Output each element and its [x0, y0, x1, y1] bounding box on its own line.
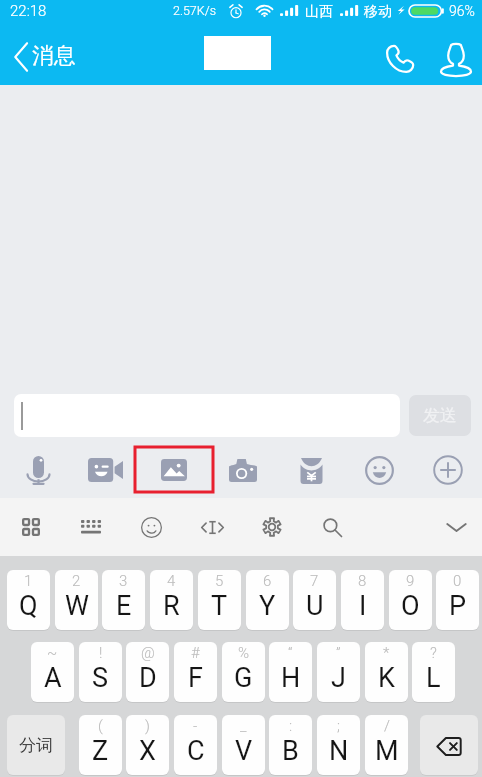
button[interactable]: 5 [198, 570, 241, 630]
staticText: A [44, 662, 62, 694]
staticText: ; [337, 717, 340, 735]
button[interactable]: # [174, 642, 217, 702]
staticText: 移动 [364, 3, 392, 21]
staticText: @ [141, 644, 155, 662]
button[interactable]: ? [412, 642, 455, 702]
button[interactable]: Voice [14, 448, 62, 492]
staticText: X [139, 735, 156, 767]
button[interactable]: More [424, 448, 472, 492]
button[interactable]: / [365, 715, 408, 775]
button[interactable]: - [174, 715, 217, 775]
button[interactable]: ! [79, 642, 122, 702]
staticText: H [281, 662, 301, 694]
button[interactable]: 1 [7, 570, 50, 630]
button[interactable]: Hide keyboard [438, 509, 474, 545]
staticText: / [384, 717, 390, 735]
staticText: - [193, 717, 198, 735]
staticText: % [238, 644, 250, 662]
staticText: 7 [310, 572, 319, 590]
button[interactable]: 2 [55, 570, 98, 630]
button[interactable]: ( [79, 715, 122, 775]
staticText: 2.57K/s [173, 3, 216, 18]
staticText: : [289, 717, 293, 735]
button[interactable]: Red packet [287, 448, 335, 492]
staticText: M [375, 735, 399, 767]
staticText: Y [259, 590, 276, 622]
button[interactable]: Delete [420, 715, 478, 775]
staticText: 9 [406, 572, 415, 590]
button[interactable]: Symbols [13, 509, 49, 545]
button[interactable]: Emoji [355, 448, 403, 492]
staticText: 分词 [19, 735, 53, 756]
staticText: C [187, 735, 205, 767]
staticText: G [234, 662, 253, 694]
button[interactable]: Move cursor [194, 509, 230, 545]
button[interactable]: Settings [254, 509, 290, 545]
button[interactable]: 6 [246, 570, 289, 630]
staticText: F [188, 662, 203, 694]
staticText: 22:18 [10, 2, 47, 20]
button[interactable]: Profile [434, 37, 478, 81]
button[interactable]: ” [317, 642, 360, 702]
staticText: W [65, 590, 89, 622]
button[interactable]: ~ [31, 642, 74, 702]
staticText: 1 [24, 572, 33, 590]
staticText: E [116, 590, 132, 622]
staticText: N [329, 735, 349, 767]
staticText: 0 [453, 572, 462, 590]
staticText: 4 [167, 572, 176, 590]
staticText: O [401, 590, 420, 622]
button[interactable]: 8 [341, 570, 384, 630]
staticText: U [306, 590, 324, 622]
button[interactable]: Search [314, 509, 350, 545]
button[interactable]: 分词 [7, 715, 65, 775]
staticText: R [163, 590, 180, 622]
button[interactable]: ; [317, 715, 360, 775]
button[interactable] [14, 394, 400, 437]
button[interactable]: : [269, 715, 312, 775]
staticText: 发送 [423, 405, 457, 426]
staticText: 6 [263, 572, 272, 590]
staticText: 3 [119, 572, 128, 590]
staticText: 2 [72, 572, 81, 590]
staticText: Q [19, 590, 38, 622]
staticText: ) [145, 717, 150, 735]
button[interactable]: 发送 [409, 395, 471, 436]
staticText: P [449, 590, 467, 622]
button[interactable]: 0 [436, 570, 479, 630]
button[interactable]: 消息 [4, 28, 86, 85]
button[interactable]: 9 [389, 570, 432, 630]
staticText: ? [430, 644, 437, 662]
button[interactable]: _ [222, 715, 265, 775]
staticText: ~ [47, 644, 58, 662]
staticText: K [378, 662, 395, 694]
button[interactable]: Image [135, 447, 213, 492]
staticText: B [282, 735, 299, 767]
staticText: ” [336, 644, 341, 662]
staticText: S [92, 662, 109, 694]
staticText: ! [99, 644, 103, 662]
button[interactable]: Keyboard layout [73, 509, 109, 545]
staticText: L [426, 662, 441, 694]
button[interactable]: * [365, 642, 408, 702]
button[interactable]: ) [126, 715, 169, 775]
staticText: * [383, 644, 390, 662]
button[interactable]: Video [81, 448, 129, 492]
button[interactable]: Camera [219, 448, 267, 492]
button[interactable]: @ [126, 642, 169, 702]
staticText: I [359, 590, 367, 622]
button[interactable]: 4 [150, 570, 193, 630]
staticText: Z [92, 735, 109, 767]
button[interactable]: % [222, 642, 265, 702]
staticText: “ [288, 644, 293, 662]
button[interactable]: 7 [293, 570, 336, 630]
staticText: V [235, 735, 253, 767]
button[interactable]: “ [269, 642, 312, 702]
staticText: 山西 [305, 3, 333, 21]
staticText: D [139, 662, 157, 694]
staticText: _ [240, 717, 247, 735]
button[interactable]: Call [378, 37, 422, 81]
button[interactable]: Emoji [133, 509, 169, 545]
staticText: ( [98, 717, 103, 735]
button[interactable]: 3 [102, 570, 145, 630]
